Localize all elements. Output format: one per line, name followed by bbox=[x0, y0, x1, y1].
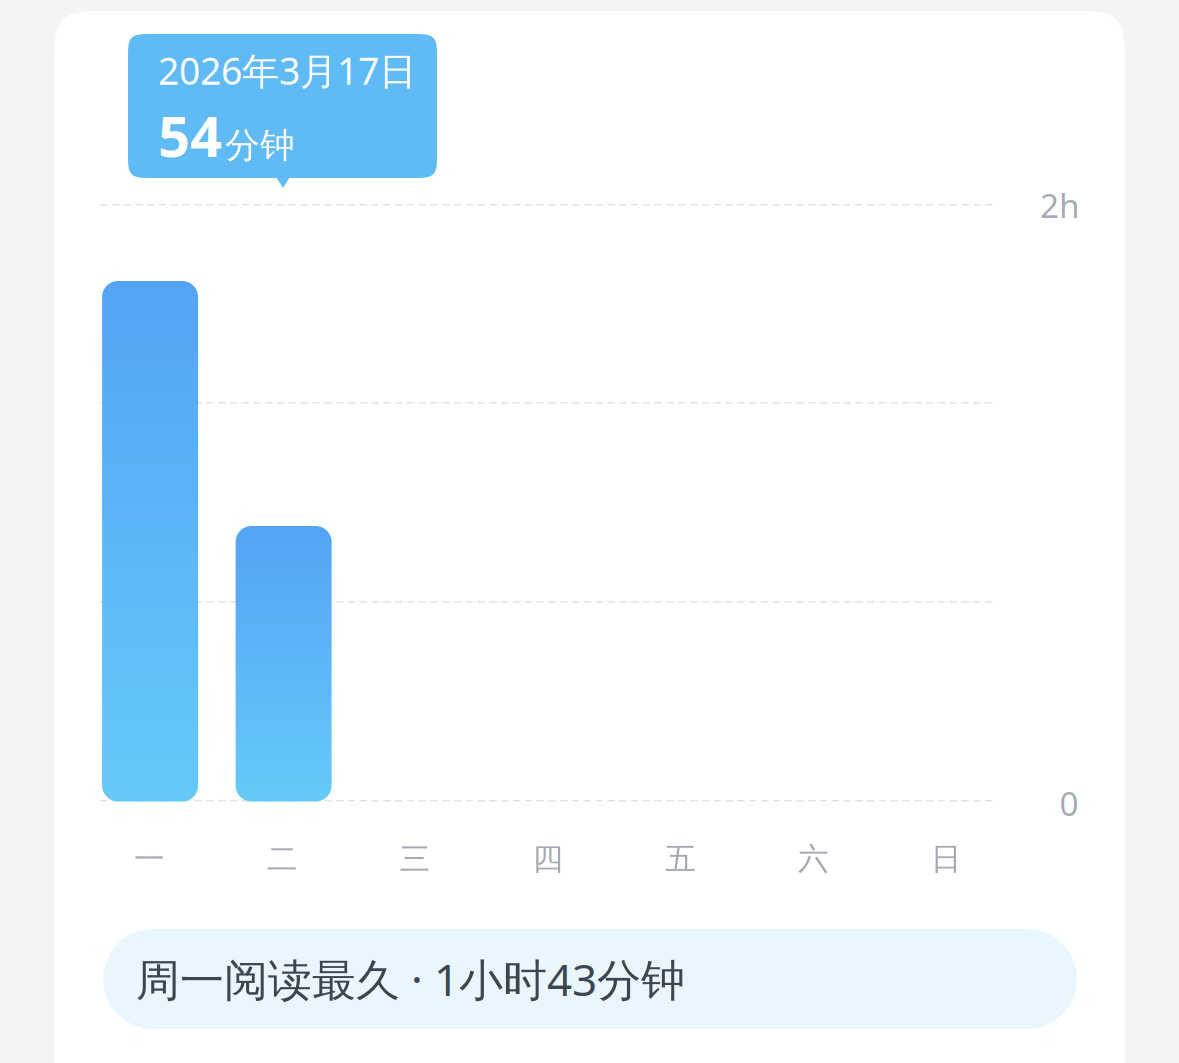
button[interactable]: 周一阅读最久 · 1小时43分钟 bbox=[103, 929, 1077, 1029]
staticText: 四 bbox=[532, 840, 563, 878]
staticText: 分钟 bbox=[225, 124, 295, 167]
staticText: 二 bbox=[267, 840, 298, 878]
button[interactable]: 星期二 bbox=[236, 526, 332, 801]
staticText: 六 bbox=[798, 840, 829, 878]
button[interactable]: 星期一 bbox=[102, 281, 198, 801]
staticText: 2h bbox=[1040, 183, 1080, 227]
staticText: 0 bbox=[1059, 781, 1078, 825]
staticText: 2026年3月17日 bbox=[158, 45, 416, 95]
staticText: 三 bbox=[400, 840, 431, 878]
staticText: 周一阅读最久 · 1小时43分钟 bbox=[136, 950, 685, 1008]
staticText: 54 bbox=[158, 98, 222, 172]
staticText: 一 bbox=[134, 840, 165, 878]
staticText: 五 bbox=[665, 840, 696, 878]
staticText: 日 bbox=[931, 840, 962, 878]
